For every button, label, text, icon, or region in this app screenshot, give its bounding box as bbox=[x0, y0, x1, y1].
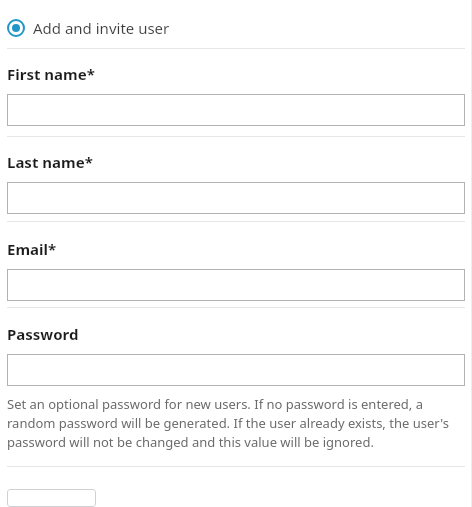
button[interactable]: Last name* bbox=[7, 182, 465, 214]
button[interactable]: Add user bbox=[7, 489, 96, 507]
staticText: Last name* bbox=[7, 152, 93, 172]
staticText: First name* bbox=[7, 64, 95, 84]
staticText: Set an optional password for new users. … bbox=[7, 395, 465, 451]
button[interactable]: First name* bbox=[7, 94, 465, 126]
staticText: Password bbox=[7, 324, 79, 344]
button[interactable]: Password bbox=[7, 354, 465, 386]
staticText: Email* bbox=[7, 239, 57, 259]
staticText: Add and invite user bbox=[33, 18, 170, 38]
button[interactable]: Email* bbox=[7, 269, 465, 301]
button[interactable]: Add and invite user bbox=[7, 18, 465, 38]
